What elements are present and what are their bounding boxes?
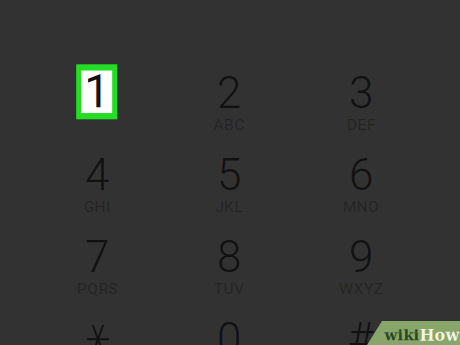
staticText: wiki <box>384 326 419 344</box>
button[interactable]: Star <box>38 303 158 345</box>
button[interactable]: 1 <box>76 64 117 119</box>
staticText: 1 <box>84 65 109 118</box>
staticText: 8 <box>217 231 241 283</box>
button[interactable]: 5 <box>169 139 289 221</box>
staticText: 5 <box>217 149 241 201</box>
staticText: ABC <box>213 116 244 134</box>
staticText: PQRS <box>77 280 117 298</box>
staticText: 4 <box>85 149 109 201</box>
button[interactable]: 0 <box>169 303 289 345</box>
button[interactable]: 8 <box>169 221 289 303</box>
staticText: 6 <box>349 149 373 201</box>
button[interactable]: 4 <box>37 139 157 221</box>
staticText: 3 <box>349 67 373 119</box>
staticText: 7 <box>85 231 109 283</box>
button[interactable]: # <box>301 303 421 345</box>
staticText: 2 <box>217 67 241 119</box>
button[interactable]: 6 <box>301 139 421 221</box>
button[interactable]: 9 <box>301 221 421 303</box>
staticText: JKL <box>215 198 242 216</box>
button[interactable]: 7 <box>37 221 157 303</box>
staticText: GHI <box>84 198 110 216</box>
button[interactable]: 3 <box>301 57 421 139</box>
staticText: How <box>419 326 459 344</box>
staticText: MNO <box>343 198 379 216</box>
staticText: 9 <box>349 231 373 283</box>
staticText: WXYZ <box>339 280 383 298</box>
staticText: DEF <box>347 116 375 134</box>
button[interactable]: 2 <box>169 57 289 139</box>
staticText: TUV <box>214 280 244 298</box>
staticText: 0 <box>217 313 241 345</box>
staticText: # <box>348 313 374 345</box>
